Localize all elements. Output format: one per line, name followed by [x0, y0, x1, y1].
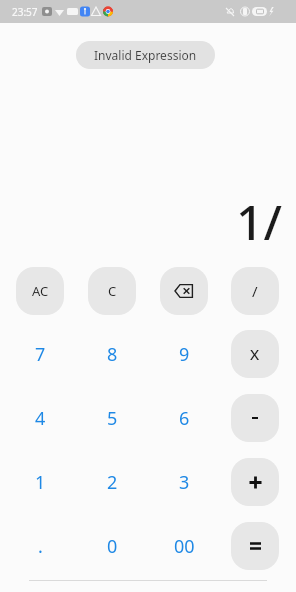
staticText: /: [252, 281, 258, 301]
button[interactable]: [160, 267, 208, 315]
button[interactable]: 4: [16, 394, 64, 442]
button[interactable]: /: [231, 267, 279, 315]
button[interactable]: 6: [160, 394, 208, 442]
staticText: 1: [35, 470, 46, 495]
button[interactable]: X: [231, 330, 279, 378]
button[interactable]: 2: [88, 458, 136, 506]
staticText: X: [250, 344, 260, 364]
staticText: 4: [35, 406, 46, 431]
staticText: 2: [107, 470, 118, 495]
button[interactable]: [231, 522, 279, 570]
button[interactable]: 3: [160, 458, 208, 506]
button[interactable]: 00: [160, 522, 208, 570]
staticText: 8: [107, 342, 118, 367]
button[interactable]: 5: [88, 394, 136, 442]
button[interactable]: .: [16, 522, 64, 570]
button[interactable]: [231, 394, 279, 442]
staticText: 23:57: [12, 5, 38, 19]
staticText: 6: [179, 406, 190, 431]
button[interactable]: Invalid Expression: [76, 41, 215, 69]
staticText: .: [38, 534, 43, 559]
staticText: 9: [179, 342, 190, 367]
button[interactable]: 9: [160, 330, 208, 378]
button[interactable]: [231, 458, 279, 506]
staticText: Invalid Expression: [94, 47, 197, 63]
staticText: 1/: [236, 189, 282, 254]
button[interactable]: 1: [16, 458, 64, 506]
button[interactable]: 8: [88, 330, 136, 378]
button[interactable]: 7: [16, 330, 64, 378]
button[interactable]: AC: [16, 267, 64, 315]
button[interactable]: 0: [88, 522, 136, 570]
staticText: 3: [179, 470, 190, 495]
staticText: AC: [32, 282, 49, 300]
staticText: 5: [107, 406, 118, 431]
staticText: 7: [35, 342, 46, 367]
button[interactable]: C: [88, 267, 136, 315]
staticText: 0: [107, 534, 118, 559]
staticText: 00: [174, 534, 195, 559]
staticText: C: [108, 282, 117, 300]
